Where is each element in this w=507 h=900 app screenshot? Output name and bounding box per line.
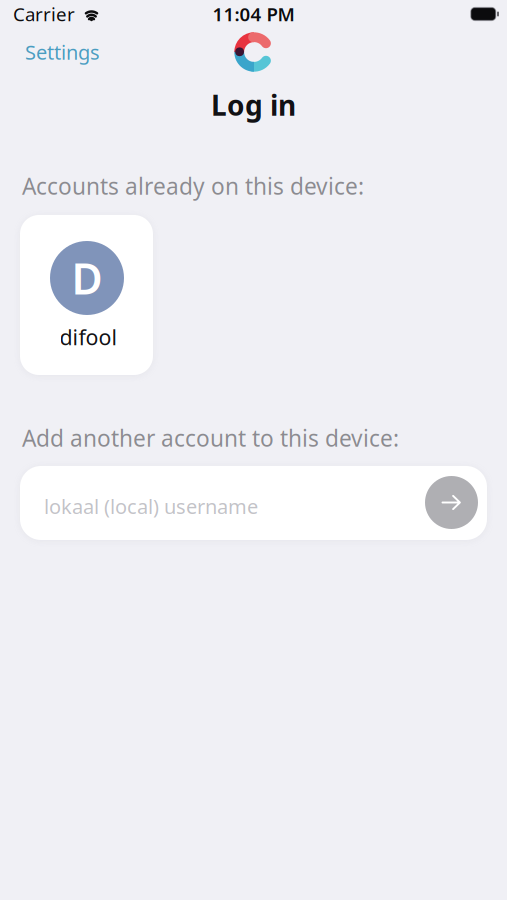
staticText: Settings (25, 39, 100, 65)
staticText: D (71, 250, 102, 306)
staticText: Carrier (13, 2, 75, 26)
button[interactable]: Settings (25, 35, 135, 69)
staticText: Add another account to this device: (22, 423, 399, 453)
staticText: lokaal (local) username (44, 493, 258, 520)
staticText: difool (59, 323, 117, 351)
button[interactable]: D (20, 215, 153, 375)
staticText: 11:04 PM (212, 2, 294, 26)
button[interactable]: Log in (425, 476, 478, 529)
staticText: Log in (211, 86, 296, 124)
staticText: Accounts already on this device: (22, 171, 364, 201)
